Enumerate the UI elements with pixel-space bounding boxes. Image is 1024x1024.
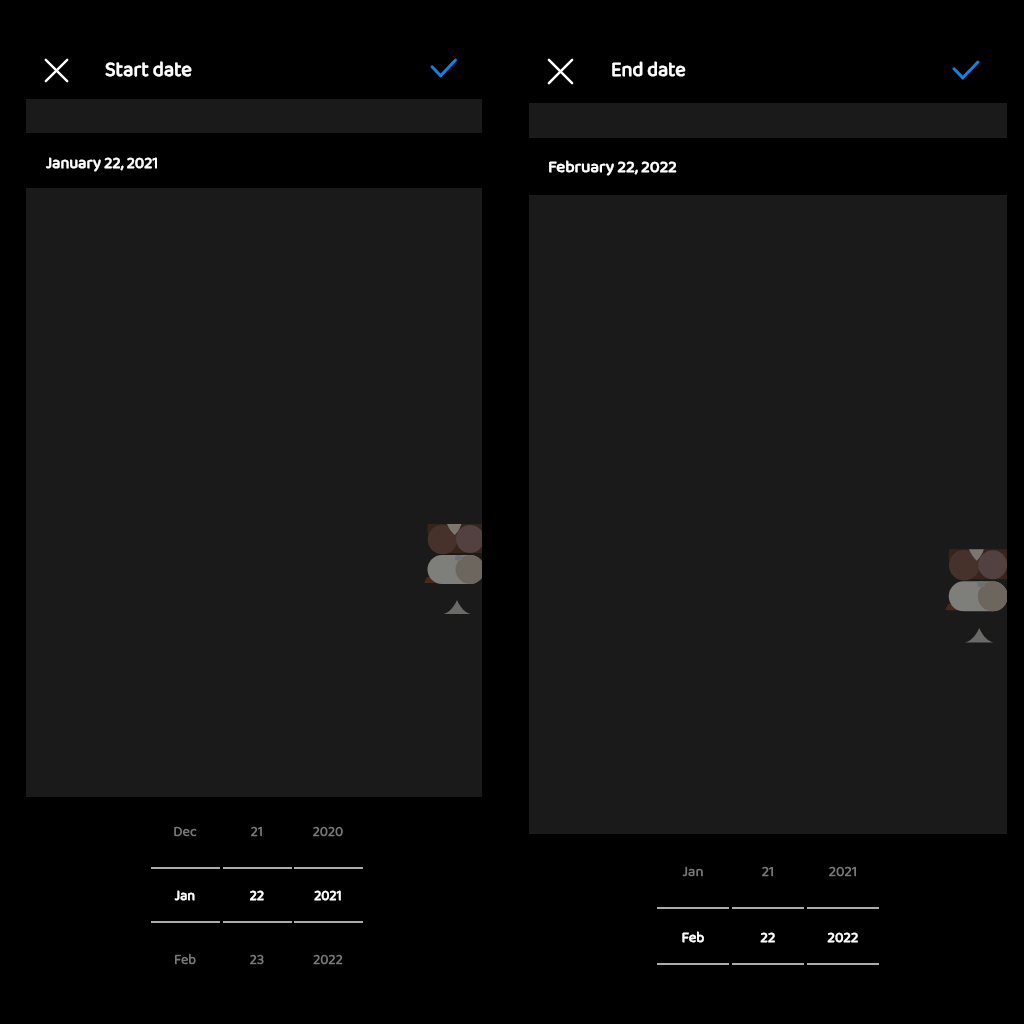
staticText: Jan <box>115 885 255 908</box>
staticText: 23 <box>187 949 327 972</box>
button[interactable] <box>294 855 363 919</box>
staticText: Dec <box>115 821 255 844</box>
button[interactable] <box>223 919 292 983</box>
staticText: February 22, 2022 <box>548 154 678 181</box>
button[interactable] <box>294 919 363 983</box>
button[interactable] <box>294 791 363 855</box>
button[interactable]: Close <box>541 52 580 91</box>
button[interactable] <box>657 828 729 894</box>
staticText: Feb <box>115 949 255 972</box>
staticText: 2022 <box>773 926 913 950</box>
staticText: 22 <box>698 926 838 950</box>
staticText: January 22, 2021 <box>46 150 159 176</box>
button[interactable] <box>807 828 879 894</box>
button[interactable] <box>732 895 804 961</box>
staticText: Feb <box>623 926 763 950</box>
staticText: 2020 <box>258 821 398 844</box>
button[interactable] <box>657 895 729 961</box>
staticText: 21 <box>698 860 838 884</box>
button[interactable] <box>223 855 292 919</box>
staticText: End date <box>611 55 686 87</box>
staticText: 2021 <box>258 885 398 908</box>
button[interactable] <box>223 791 292 855</box>
button[interactable]: Close <box>38 52 75 89</box>
button[interactable]: Confirm <box>944 52 988 88</box>
button[interactable] <box>151 791 220 855</box>
staticText: 2021 <box>773 860 913 884</box>
staticText: Jan <box>623 860 763 884</box>
staticText: 21 <box>187 821 327 844</box>
button[interactable] <box>151 855 220 919</box>
button[interactable] <box>732 828 804 894</box>
staticText: Start date <box>105 54 192 87</box>
button[interactable] <box>151 919 220 983</box>
staticText: 22 <box>187 885 327 908</box>
button[interactable]: Confirm <box>422 50 466 86</box>
staticText: 2022 <box>258 949 398 972</box>
button[interactable] <box>807 895 879 961</box>
